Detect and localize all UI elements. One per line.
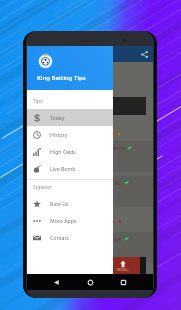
button[interactable]: High Odds (27, 143, 113, 160)
other: Back (53, 279, 60, 286)
other: Home (87, 279, 94, 286)
staticText: King Betting Tips (37, 74, 86, 82)
button[interactable]: History (27, 126, 113, 143)
staticText: Barcelona (99, 144, 125, 151)
staticText: High Odds (50, 148, 76, 155)
button[interactable]: Banner ad (27, 97, 146, 115)
staticText: More Apps (50, 217, 77, 224)
staticText: Milan FC (99, 179, 122, 186)
button[interactable]: Juventus (27, 232, 153, 263)
staticText: Today (50, 114, 65, 121)
button[interactable]: Live Bomb (27, 160, 113, 177)
button[interactable]: Advertisement (106, 257, 140, 274)
button[interactable]: More Apps (27, 212, 113, 229)
button[interactable]: Contact (27, 229, 113, 246)
staticText: History (50, 131, 68, 138)
staticText: Tips (33, 98, 43, 105)
button[interactable]: Today (27, 109, 113, 126)
button[interactable]: Milan FC (27, 176, 153, 207)
staticText: HERE (101, 130, 115, 137)
other: Recents (120, 279, 127, 286)
staticText: ◀ (117, 131, 121, 136)
staticText: Live Bomb (50, 165, 76, 172)
staticText: Support (33, 184, 52, 191)
button[interactable]: Rate Us (27, 195, 113, 212)
button[interactable]: Share (139, 49, 149, 59)
staticText: Rate Us (50, 200, 69, 207)
staticText: y Free (100, 218, 116, 225)
button[interactable]: Barcelona (27, 141, 153, 172)
staticText: Juventus (99, 235, 122, 242)
staticText: INSTALL (117, 268, 129, 272)
staticText: Contact (50, 234, 69, 241)
